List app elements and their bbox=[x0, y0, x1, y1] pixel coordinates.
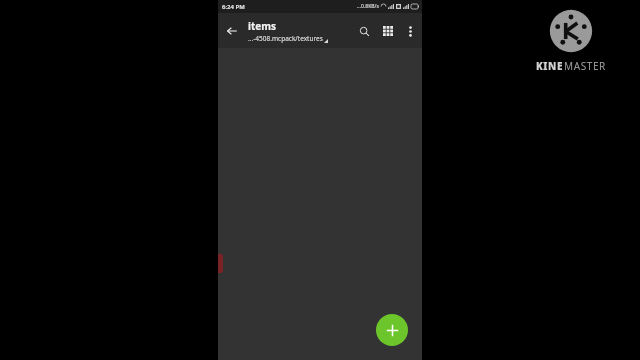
button[interactable]: Add bbox=[376, 314, 408, 346]
staticText: MASTER bbox=[564, 59, 606, 73]
staticText: ...0.8KB/s bbox=[357, 3, 379, 10]
staticText: items bbox=[248, 19, 277, 33]
button[interactable]: Search bbox=[352, 19, 376, 43]
button[interactable]: items bbox=[248, 19, 350, 43]
staticText: KINE bbox=[536, 59, 564, 73]
button[interactable]: Grid view bbox=[376, 19, 400, 43]
button[interactable]: Back bbox=[218, 17, 246, 45]
staticText: 6:24 PM bbox=[222, 3, 245, 11]
button[interactable]: More options bbox=[400, 21, 420, 41]
staticText: ...-4508.mcpack/textures bbox=[248, 34, 323, 43]
